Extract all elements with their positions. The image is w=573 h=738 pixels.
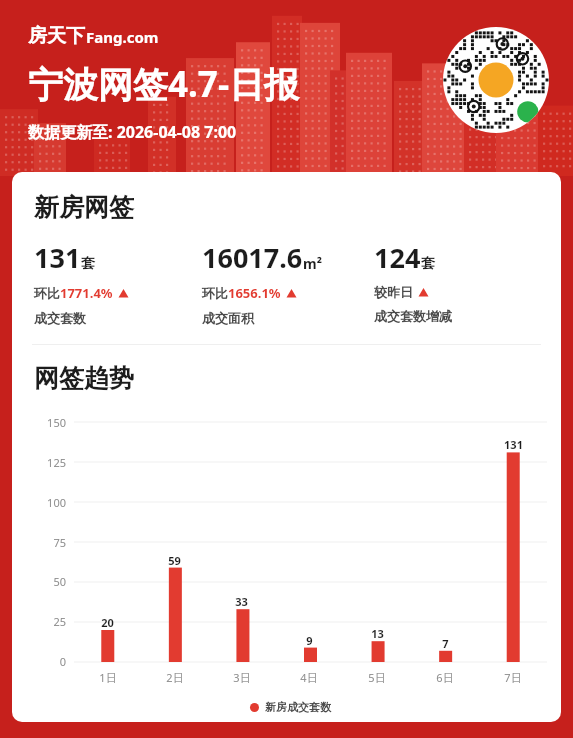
staticText: 6日 [436, 670, 454, 685]
staticText: 成交面积 [202, 310, 254, 326]
staticText: 7 [442, 636, 449, 651]
staticText: 网签趋势 [34, 363, 134, 394]
staticText: 套 [421, 255, 435, 273]
staticText: 成交套数 [34, 310, 86, 326]
staticText: 环比 [202, 285, 228, 301]
staticText: 33 [235, 594, 248, 609]
staticText: 16017.6 [202, 239, 303, 276]
staticText: 房天下 [28, 24, 85, 48]
staticText: Fang.com [86, 27, 159, 47]
button[interactable]: 房天下小程序二维码 [443, 27, 549, 133]
button[interactable]: 131 [34, 239, 202, 326]
staticText: 新房成交套数 [265, 700, 331, 714]
staticText: 成交套数增减 [374, 308, 452, 324]
button[interactable]: 16017.6 [202, 239, 374, 326]
button[interactable]: 新房成交套数 [34, 700, 547, 714]
staticText: 13 [371, 626, 384, 641]
staticText: 3日 [233, 670, 251, 685]
button[interactable]: 房天下 [28, 24, 159, 48]
staticText: 1日 [99, 670, 117, 685]
staticText: 套 [81, 255, 95, 273]
staticText: 数据更新至: 2026-04-08 7:00 [28, 121, 237, 143]
staticText: 7日 [504, 670, 522, 685]
staticText: 1656.1% [228, 284, 281, 302]
staticText: 5日 [368, 670, 386, 685]
staticText: 124 [374, 239, 421, 276]
button[interactable]: 124 [374, 239, 547, 324]
staticText: m² [303, 254, 322, 273]
staticText: 20 [101, 615, 114, 630]
staticText: 4日 [300, 670, 318, 685]
staticText: 较昨日 [374, 284, 413, 300]
staticText: 1771.4% [60, 284, 113, 302]
staticText: 2日 [166, 670, 184, 685]
staticText: 9 [306, 633, 313, 648]
staticText: 125 [47, 455, 66, 470]
staticText: 新房网签 [34, 192, 134, 223]
staticText: 宁波网签4.7-日报 [28, 60, 300, 108]
staticText: 150 [47, 415, 66, 430]
staticText: 25 [53, 614, 66, 629]
staticText: 131 [34, 239, 81, 276]
staticText: 100 [47, 495, 66, 510]
staticText: 59 [168, 553, 181, 568]
staticText: 0 [59, 654, 66, 669]
staticText: 50 [53, 574, 66, 589]
staticText: 131 [504, 437, 523, 452]
staticText: 环比 [34, 285, 60, 301]
staticText: 75 [53, 535, 66, 550]
